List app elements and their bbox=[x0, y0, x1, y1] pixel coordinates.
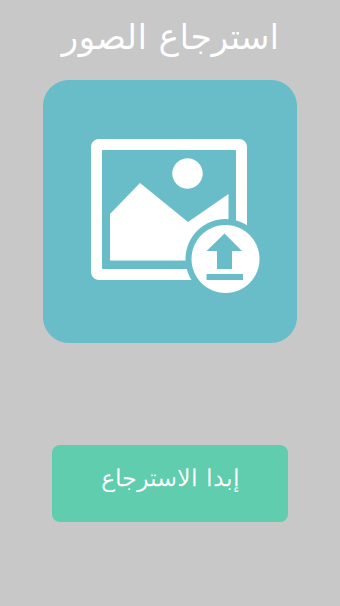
staticText: إبدا الاسترجاع bbox=[100, 464, 239, 492]
button[interactable]: إبدا الاسترجاع bbox=[52, 445, 288, 522]
staticText: استرجاع الصور bbox=[61, 17, 279, 57]
